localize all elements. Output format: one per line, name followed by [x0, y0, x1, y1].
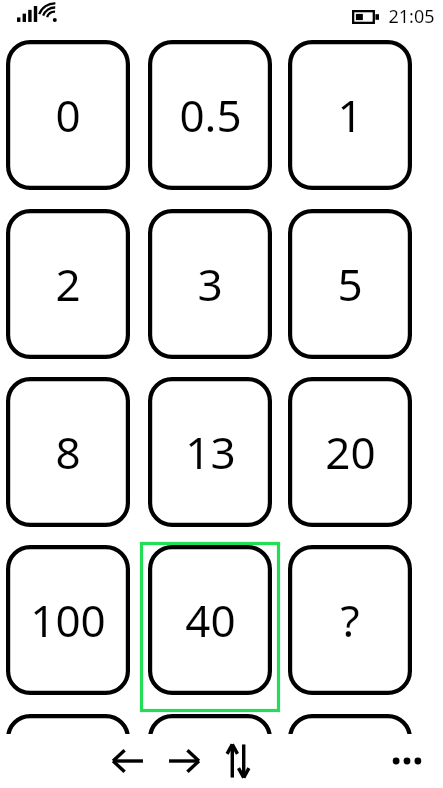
staticText: 100 — [30, 590, 106, 650]
button[interactable]: Back — [104, 740, 152, 782]
button[interactable]: 40 — [148, 545, 272, 695]
button[interactable]: Sort — [216, 738, 260, 784]
button[interactable]: 8 — [6, 377, 130, 527]
staticText: ? — [340, 590, 360, 650]
staticText: 1 — [337, 85, 363, 145]
button[interactable] — [288, 714, 412, 788]
staticText: 0 — [55, 85, 81, 145]
button[interactable]: More options — [382, 740, 432, 782]
button[interactable] — [140, 542, 280, 712]
button[interactable]: ? — [288, 545, 412, 695]
button[interactable] — [6, 714, 130, 788]
button[interactable]: 2 — [6, 209, 130, 359]
staticText: 8 — [55, 422, 81, 482]
staticText: 20 — [325, 422, 376, 482]
button[interactable]: 5 — [288, 209, 412, 359]
staticText: 5 — [337, 254, 363, 314]
button[interactable]: 1 — [288, 40, 412, 190]
button[interactable]: 13 — [148, 377, 272, 527]
button[interactable]: 3 — [148, 209, 272, 359]
button[interactable] — [148, 714, 272, 788]
button[interactable]: 0 — [6, 40, 130, 190]
staticText: 2 — [55, 254, 81, 314]
button[interactable]: 20 — [288, 377, 412, 527]
button[interactable]: 0.5 — [148, 40, 272, 190]
staticText: 3 — [197, 254, 223, 314]
button[interactable]: Forward — [160, 740, 208, 782]
staticText: 40 — [185, 590, 236, 650]
staticText: 13 — [185, 422, 236, 482]
staticText: 21:05 — [388, 4, 435, 29]
button[interactable]: 100 — [6, 545, 130, 695]
staticText: 0.5 — [179, 85, 242, 145]
